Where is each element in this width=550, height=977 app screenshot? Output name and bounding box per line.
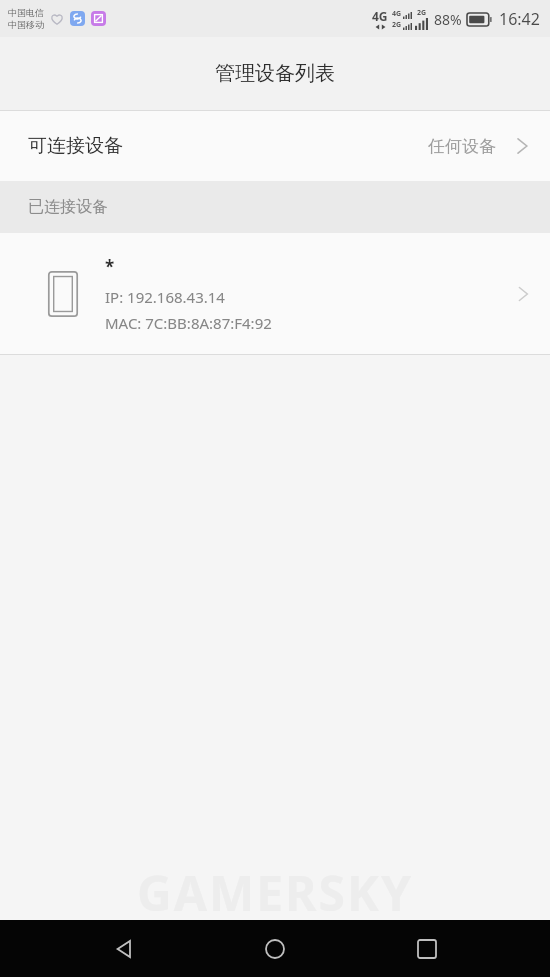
staticText: 管理设备列表	[215, 61, 335, 86]
staticText: *	[105, 255, 115, 278]
staticText: MAC: 7C:BB:8A:87:F4:92	[105, 313, 272, 333]
staticText: 中国移动	[8, 19, 44, 30]
other: Open	[512, 136, 532, 156]
staticText: 任何设备	[428, 136, 496, 157]
staticText: 4G	[392, 9, 402, 19]
button[interactable]: *	[0, 233, 550, 354]
button[interactable]: Recents	[399, 921, 455, 977]
staticText: 2G	[392, 20, 402, 30]
staticText: 4G	[372, 8, 388, 24]
button[interactable]: 可连接设备	[0, 111, 550, 181]
staticText: 已连接设备	[28, 197, 108, 217]
staticText: 16:42	[499, 8, 540, 30]
staticText: 88%	[434, 10, 462, 29]
button[interactable]: Home	[247, 921, 303, 977]
staticText: 2G	[417, 8, 427, 18]
other: Open	[514, 285, 532, 303]
button[interactable]: Back	[96, 921, 152, 977]
staticText: GAMERSKY	[137, 860, 413, 920]
staticText: IP: 192.168.43.14	[105, 287, 225, 307]
staticText: 中国电信	[8, 7, 44, 18]
staticText: 可连接设备	[28, 134, 123, 158]
